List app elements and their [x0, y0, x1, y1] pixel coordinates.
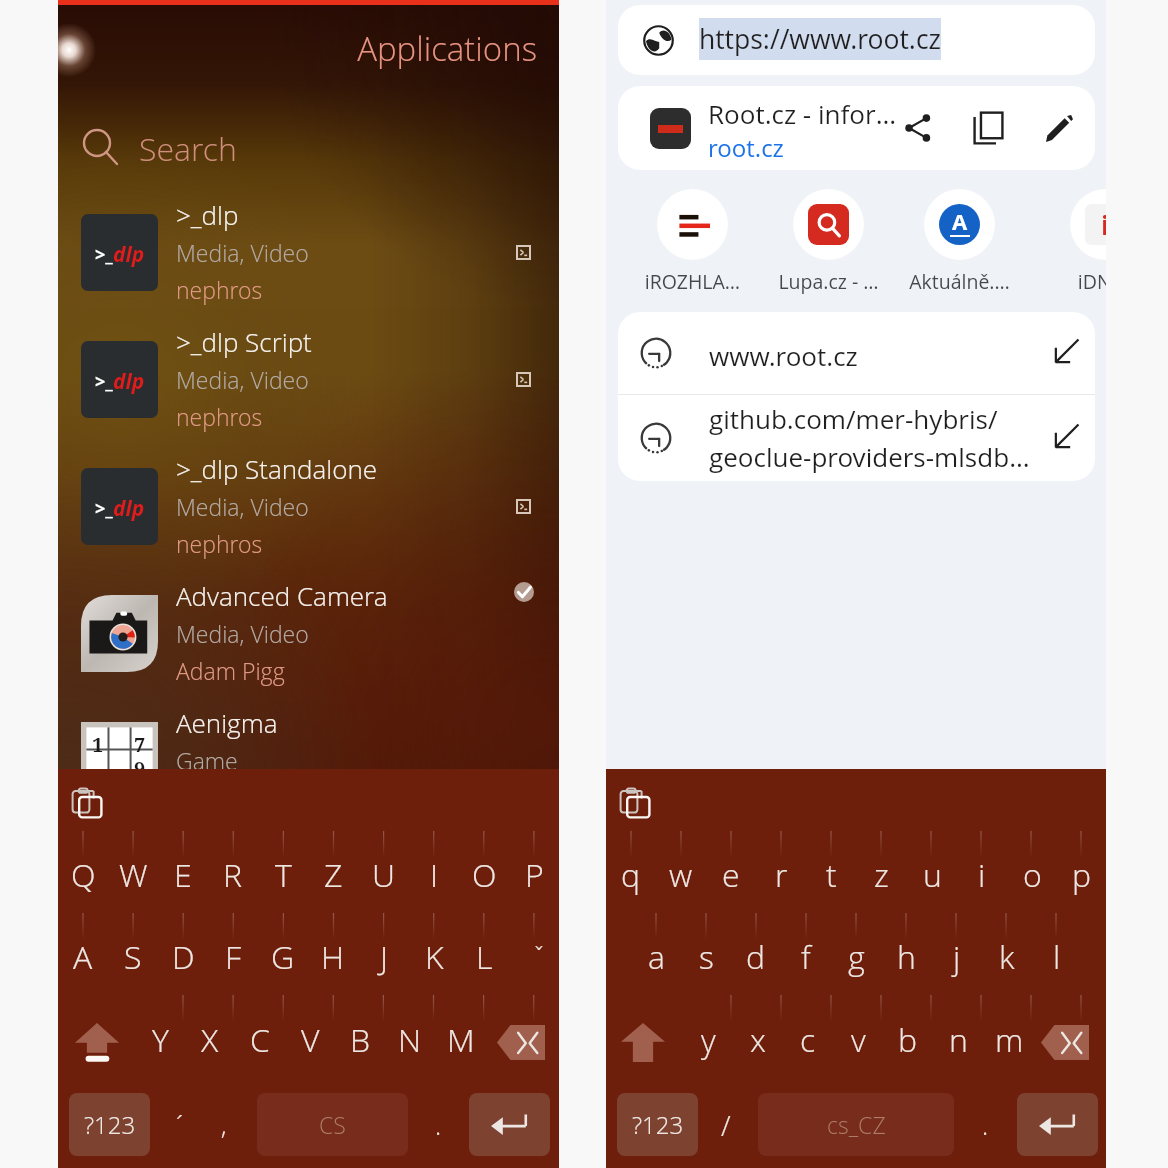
staticText: v — [851, 1018, 866, 1062]
staticText: Adam Pigg — [176, 655, 516, 686]
button[interactable]: h — [881, 927, 931, 987]
staticText: o — [1023, 853, 1042, 897]
button[interactable]: m — [984, 1010, 1034, 1070]
button[interactable]: Shift — [75, 1023, 119, 1061]
button[interactable]: Advanced Camera — [58, 570, 559, 697]
button[interactable]: Insert suggestion — [1042, 413, 1090, 461]
button[interactable]: D — [158, 927, 208, 987]
button[interactable]: k — [982, 927, 1032, 987]
button[interactable]: i — [957, 845, 1007, 905]
button[interactable]: >_ — [58, 316, 559, 443]
button[interactable]: Clipboard — [72, 788, 102, 818]
button[interactable]: Backspace — [1041, 1025, 1089, 1060]
button[interactable]: s — [681, 927, 731, 987]
button[interactable]: iROZHLA… — [625, 184, 760, 292]
button[interactable]: u — [907, 845, 957, 905]
button[interactable]: Shift — [621, 1023, 665, 1062]
button[interactable]: Lupa.cz - … — [761, 184, 896, 292]
button[interactable]: H — [308, 927, 358, 987]
staticText: Advanced Camera — [176, 578, 516, 613]
button[interactable]: Edit — [1034, 103, 1084, 153]
button[interactable]: N — [385, 1010, 435, 1070]
button[interactable]: i — [1038, 184, 1106, 292]
button[interactable]: Search — [58, 118, 559, 176]
button[interactable]: Copy — [963, 103, 1013, 153]
button[interactable]: cs_CZ — [758, 1093, 954, 1156]
button[interactable]: . — [416, 1093, 460, 1156]
button[interactable]: 1 — [58, 697, 559, 769]
button[interactable]: www.root.cz — [618, 312, 1095, 394]
button[interactable]: X — [185, 1010, 235, 1070]
staticText: c — [800, 1018, 816, 1062]
staticText: l — [1053, 935, 1061, 979]
button[interactable]: S — [108, 927, 158, 987]
button[interactable]: g — [831, 927, 881, 987]
staticText: iROZHLA… — [625, 268, 760, 295]
button[interactable]: ?123 — [69, 1093, 150, 1156]
button[interactable]: Q — [58, 845, 108, 905]
button[interactable]: Y — [135, 1010, 185, 1070]
button[interactable]: A — [892, 184, 1027, 292]
button[interactable]: J — [359, 927, 409, 987]
button[interactable]: Backspace — [497, 1025, 545, 1060]
button[interactable]: R — [208, 845, 258, 905]
button[interactable]: K — [409, 927, 459, 987]
button[interactable]: >_ — [58, 443, 559, 570]
button[interactable]: E — [158, 845, 208, 905]
button[interactable]: x — [733, 1010, 783, 1070]
button[interactable]: F — [208, 927, 258, 987]
button[interactable]: P — [509, 845, 559, 905]
button[interactable]: , — [202, 1093, 246, 1156]
button[interactable]: Z — [308, 845, 358, 905]
button[interactable]: z — [856, 845, 906, 905]
button[interactable]: O — [459, 845, 509, 905]
button[interactable]: U — [359, 845, 409, 905]
button[interactable]: q — [606, 845, 656, 905]
button[interactable]: L — [459, 927, 509, 987]
button[interactable]: G — [258, 927, 308, 987]
button[interactable]: d — [731, 927, 781, 987]
button[interactable]: c — [783, 1010, 833, 1070]
staticText: x — [750, 1018, 766, 1062]
button[interactable]: p — [1057, 845, 1106, 905]
button[interactable]: r — [756, 845, 806, 905]
button[interactable]: y — [683, 1010, 733, 1070]
button[interactable]: ´ — [158, 1093, 202, 1156]
staticText: Z — [324, 853, 343, 897]
button[interactable]: n — [933, 1010, 983, 1070]
button[interactable]: Share — [893, 103, 943, 153]
staticText: i — [1101, 206, 1106, 243]
button[interactable]: CS — [257, 1093, 408, 1156]
button[interactable]: https://www.root.cz — [618, 5, 1095, 75]
button[interactable]: Clipboard — [620, 788, 650, 818]
button[interactable]: Enter — [1017, 1093, 1098, 1156]
button[interactable]: f — [781, 927, 831, 987]
button[interactable]: e — [706, 845, 756, 905]
button[interactable]: t — [806, 845, 856, 905]
staticText: k — [999, 935, 1015, 979]
button[interactable]: w — [656, 845, 706, 905]
button[interactable]: C — [235, 1010, 285, 1070]
button[interactable]: o — [1007, 845, 1057, 905]
button[interactable]: b — [883, 1010, 933, 1070]
button[interactable]: T — [258, 845, 308, 905]
button[interactable]: l — [1032, 927, 1082, 987]
button[interactable]: Insert suggestion — [1042, 328, 1090, 376]
staticText: f — [801, 935, 811, 979]
button[interactable]: W — [108, 845, 158, 905]
button[interactable]: github.com/mer-hybris/ — [618, 395, 1095, 481]
button[interactable]: >_ — [58, 189, 559, 316]
button[interactable]: Enter — [469, 1093, 550, 1156]
button[interactable]: a — [631, 927, 681, 987]
button[interactable]: ?123 — [617, 1093, 698, 1156]
button[interactable]: j — [932, 927, 982, 987]
button[interactable]: Root.cz - information server — [618, 86, 888, 170]
button[interactable]: A — [58, 927, 108, 987]
button[interactable]: M — [436, 1010, 486, 1070]
button[interactable]: V — [285, 1010, 335, 1070]
button[interactable]: I — [409, 845, 459, 905]
button[interactable]: . — [963, 1093, 1007, 1156]
button[interactable]: / — [704, 1093, 748, 1156]
button[interactable]: v — [833, 1010, 883, 1070]
button[interactable]: B — [335, 1010, 385, 1070]
